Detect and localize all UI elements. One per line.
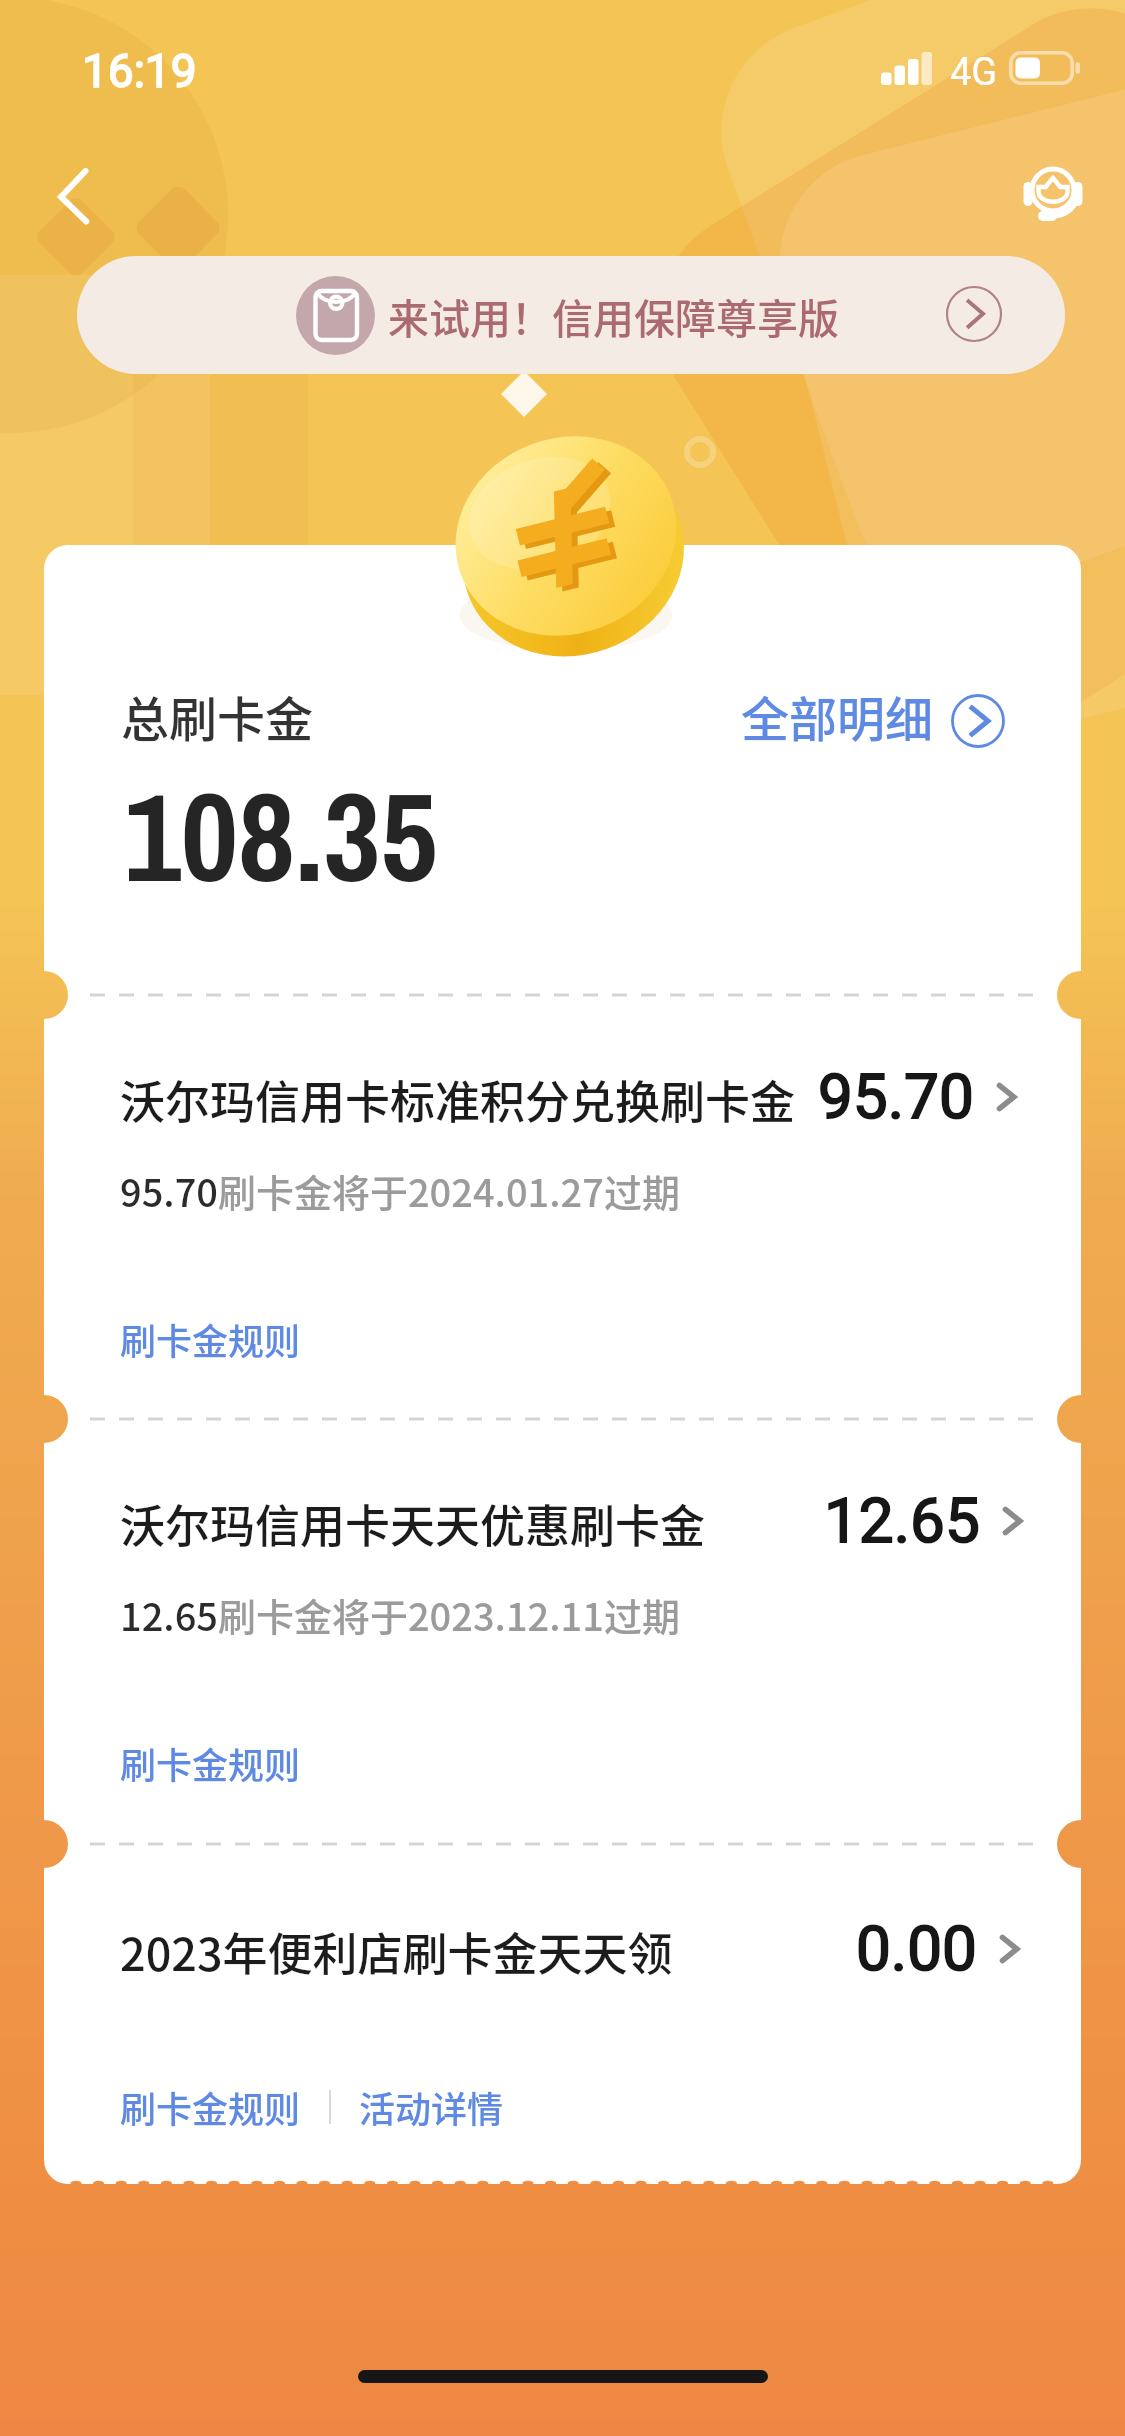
button[interactable]: 刷卡金规则 bbox=[120, 1737, 301, 1789]
staticText: 108.35 bbox=[124, 752, 438, 920]
button[interactable]: 来试用！信用保障尊享版 bbox=[77, 256, 1065, 374]
staticText: 0.00 bbox=[856, 1912, 977, 1985]
staticText: 沃尔玛信用卡天天优惠刷卡金 bbox=[120, 1491, 706, 1556]
staticText: 来试用！信用保障尊享版 bbox=[388, 286, 839, 345]
staticText: 沃尔玛信用卡标准积分兑换刷卡金 bbox=[120, 1067, 796, 1132]
staticText: 刷卡金规则 bbox=[120, 1313, 301, 1365]
staticText: 12.65刷卡金将于2023.12.11过期 bbox=[120, 1587, 680, 1642]
button[interactable]: 0.00 bbox=[856, 1912, 1029, 1985]
button[interactable]: Back bbox=[34, 145, 134, 245]
staticText: 4G bbox=[950, 50, 998, 95]
staticText: 95.70 bbox=[818, 1060, 974, 1133]
staticText: 总刷卡金 bbox=[121, 681, 314, 751]
button[interactable]: 全部明细 bbox=[741, 681, 1006, 751]
staticText: 12.65 bbox=[824, 1484, 980, 1557]
button[interactable]: 活动详情 bbox=[359, 2081, 504, 2133]
button[interactable]: 刷卡金规则 bbox=[120, 1313, 301, 1365]
staticText: 16:19 bbox=[82, 44, 197, 98]
button[interactable]: 刷卡金规则 bbox=[120, 2081, 301, 2133]
staticText: 95.70刷卡金将于2024.01.27过期 bbox=[120, 1163, 680, 1218]
button[interactable]: 12.65 bbox=[824, 1484, 1032, 1557]
button[interactable]: Customer service bbox=[1006, 160, 1096, 240]
button[interactable]: 95.70 bbox=[818, 1060, 1026, 1133]
staticText: 2023年便利店刷卡金天天领 bbox=[120, 1919, 673, 1984]
staticText: 活动详情 bbox=[359, 2081, 504, 2133]
staticText: 刷卡金规则 bbox=[120, 2081, 301, 2133]
staticText: 全部明细 bbox=[741, 681, 934, 751]
staticText: 刷卡金规则 bbox=[120, 1737, 301, 1789]
